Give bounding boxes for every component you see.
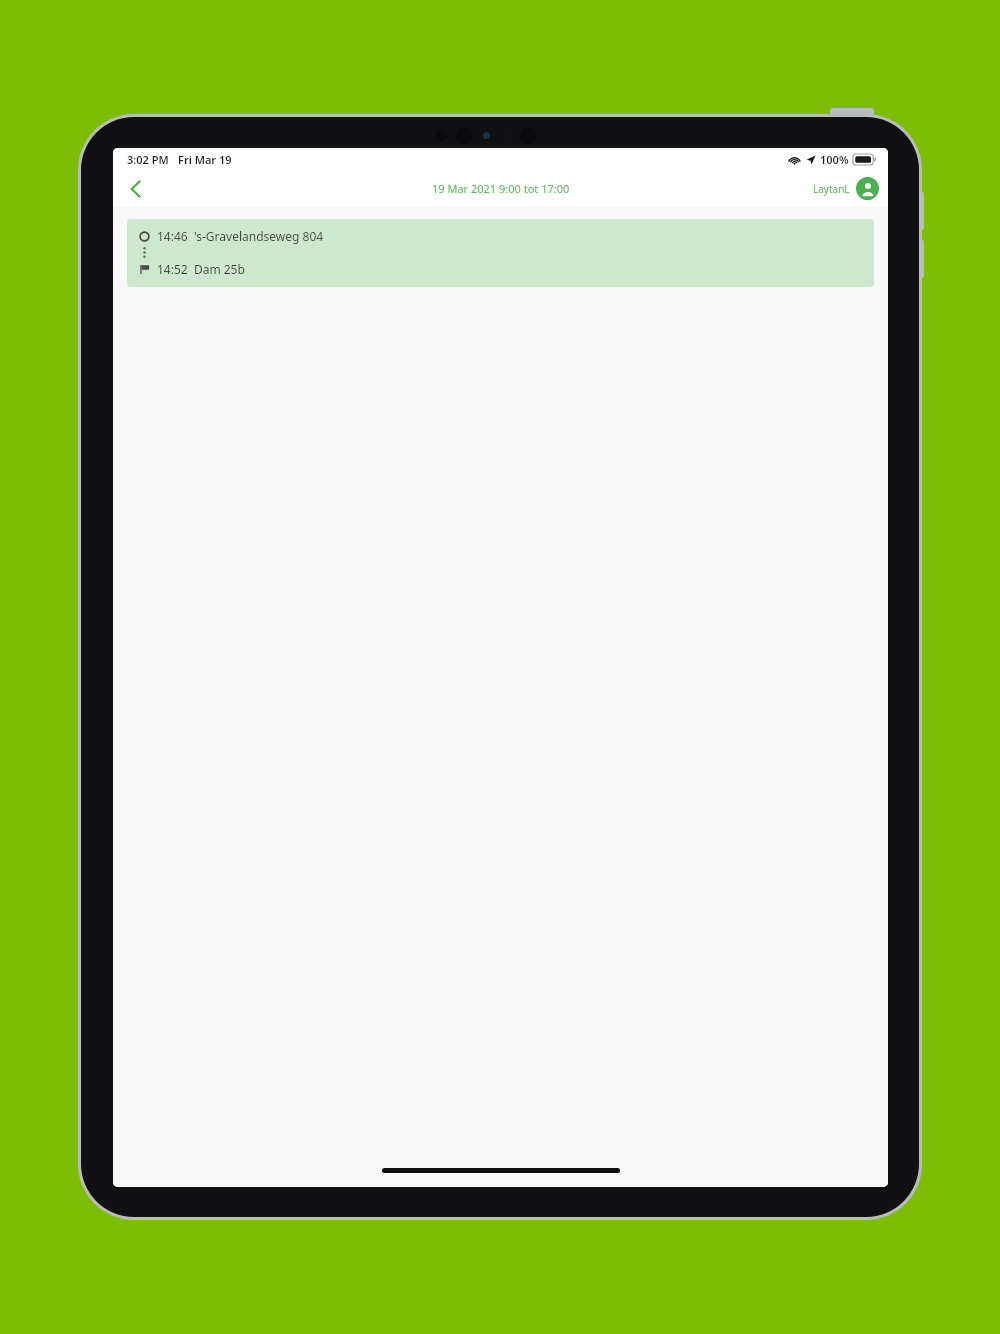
staticText: 19 Mar 2021 9:00 tot 17:00	[432, 181, 570, 196]
staticText: 14:46 's-Gravelandseweg 804	[157, 228, 324, 244]
button[interactable]: Back	[119, 172, 153, 206]
staticText: Fri Mar 19	[178, 152, 232, 167]
button[interactable]: 14:46 's-Gravelandseweg 804	[127, 219, 874, 287]
staticText: 14:52 Dam 25b	[157, 261, 245, 277]
staticText: 3:02 PM	[127, 152, 169, 167]
staticText: 100%	[820, 152, 849, 167]
staticText: LaytanL	[813, 182, 850, 196]
button[interactable]: Profile LaytanL	[813, 177, 879, 200]
